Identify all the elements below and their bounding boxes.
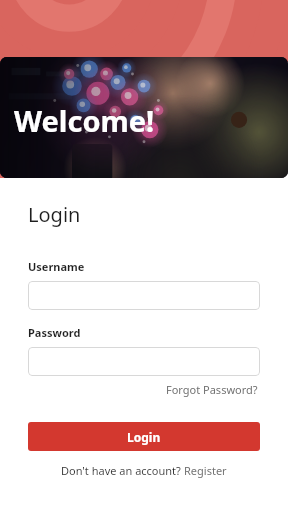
staticText: Don't have an account? <box>61 463 184 478</box>
button[interactable]: Register <box>184 463 227 478</box>
staticText: Forgot Password? <box>166 382 258 397</box>
staticText: Login <box>28 201 81 228</box>
staticText: Password <box>28 325 81 340</box>
staticText: Welcome! <box>14 101 155 140</box>
staticText: Login <box>127 429 161 445</box>
button[interactable]: Login <box>28 422 260 451</box>
staticText: Username <box>28 259 85 274</box>
button[interactable] <box>28 281 260 310</box>
button[interactable] <box>28 347 260 376</box>
button[interactable]: Forgot Password? <box>164 380 260 399</box>
staticText: Register <box>184 463 227 478</box>
